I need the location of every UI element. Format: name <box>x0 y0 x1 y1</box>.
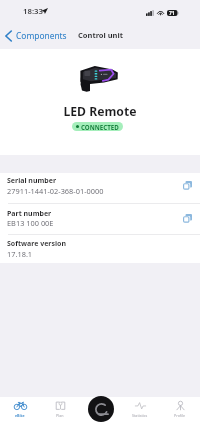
staticText: Plan <box>56 413 64 418</box>
staticText: 17.18.1 <box>7 249 33 259</box>
staticText: Serial number <box>7 176 57 186</box>
staticText: Software version <box>7 239 66 249</box>
button[interactable]: Copy Serial number <box>182 180 193 191</box>
button[interactable]: COBI home <box>88 396 114 422</box>
button[interactable]: Plan <box>40 397 80 435</box>
staticText: 71 <box>169 10 175 16</box>
button[interactable]: Copy Part number <box>0 203 200 234</box>
button[interactable]: Statistics <box>120 397 160 435</box>
staticText: Profile <box>174 413 186 418</box>
staticText: eBike <box>15 413 25 418</box>
staticText: EB13 100 00E <box>7 218 54 228</box>
button[interactable]: Profile <box>160 397 200 435</box>
staticText: Components <box>16 30 67 41</box>
button[interactable] <box>0 234 200 263</box>
staticText: LED Remote <box>0 103 200 120</box>
staticText: 18:33 <box>23 6 43 17</box>
staticText: 27911-1441-02-368-01-0000 <box>7 186 104 196</box>
staticText: Statistics <box>132 413 148 418</box>
button[interactable]: Copy Serial number <box>0 173 200 203</box>
button[interactable]: Components <box>2 28 70 43</box>
button[interactable]: CONNECTED <box>76 122 119 131</box>
button[interactable]: eBike <box>0 397 40 435</box>
staticText: CONNECTED <box>81 123 119 131</box>
button[interactable]: Copy Part number <box>182 213 193 224</box>
staticText: Part number <box>7 209 52 219</box>
staticText: Control unit <box>78 30 123 40</box>
